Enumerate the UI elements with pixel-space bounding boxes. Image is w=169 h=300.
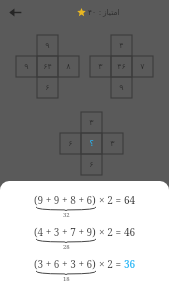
staticText: ۶ (89, 160, 94, 169)
button[interactable]: ۹ (16, 35, 79, 98)
staticText: ؟ (89, 139, 94, 148)
staticText: 32 (63, 211, 70, 219)
button[interactable]: ۴ (90, 35, 153, 98)
staticText: ۹ (119, 83, 124, 92)
staticText: : امتیاز (99, 7, 120, 17)
staticText: × 2 = (99, 257, 121, 271)
staticText: × 2 = (99, 193, 121, 207)
staticText: (9 + 9 + 8 + 6) (34, 193, 96, 207)
staticText: ۴۶ (117, 62, 126, 71)
staticText: 18 (63, 275, 70, 283)
staticText: ۸ (66, 62, 71, 71)
staticText: (4 + 3 + 7 + 9) (34, 225, 96, 239)
staticText: ۶ (45, 83, 50, 92)
staticText: ۳ (98, 62, 103, 71)
staticText: (3 + 6 + 3 + 6) (34, 257, 96, 271)
staticText: ۷ (140, 62, 145, 71)
button[interactable]: ۴۰ (77, 7, 120, 17)
staticText: 46 (124, 225, 136, 239)
staticText: × 2 = (99, 225, 121, 239)
staticText: ۶۴ (43, 62, 52, 71)
staticText: ۴ (119, 41, 124, 50)
staticText: 36 (124, 257, 136, 271)
staticText: ۳ (110, 139, 115, 148)
staticText: 28 (63, 243, 70, 251)
staticText: ۹ (24, 62, 29, 71)
button[interactable]: ۳ (60, 112, 123, 175)
staticText: ۶ (68, 139, 73, 148)
staticText: 64 (124, 193, 136, 207)
staticText: ۳ (89, 118, 94, 127)
staticText: ۹ (45, 41, 50, 50)
button[interactable]: Back (4, 1, 26, 23)
staticText: ۴۰ (88, 8, 97, 17)
